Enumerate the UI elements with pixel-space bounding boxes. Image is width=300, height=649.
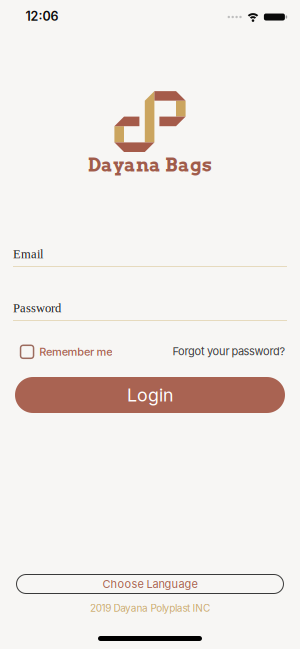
button[interactable]: Remember me xyxy=(20,345,244,359)
staticText: 2019 Dayana Polyplast INC xyxy=(90,602,210,614)
button[interactable]: Choose Language xyxy=(16,574,284,594)
staticText: Remember me xyxy=(39,345,112,358)
staticText: Password xyxy=(13,301,61,315)
staticText: Forgot your password? xyxy=(172,345,285,358)
staticText: Dayana Bags xyxy=(88,154,212,176)
staticText: 12:06 xyxy=(25,9,58,24)
button[interactable]: Forgot your password? xyxy=(15,345,285,358)
staticText: Choose Language xyxy=(102,577,197,590)
button[interactable]: Login xyxy=(15,377,285,413)
staticText: Login xyxy=(127,384,173,406)
staticText: Email xyxy=(13,247,43,261)
